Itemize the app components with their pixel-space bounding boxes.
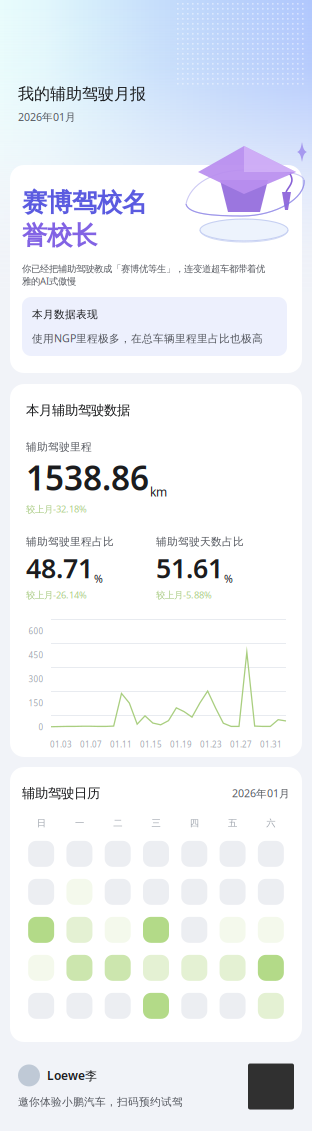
staticText: 较上月-5.88% <box>156 589 212 601</box>
staticText: 我的辅助驾驶月报 <box>18 84 146 104</box>
staticText: 较上月-32.18% <box>26 503 87 515</box>
staticText: 150 <box>28 698 43 708</box>
staticText: 三 <box>151 817 160 829</box>
staticText: 450 <box>28 650 43 660</box>
staticText: 51.61 <box>156 550 223 586</box>
staticText: 四 <box>190 817 199 829</box>
staticText: 48.71 <box>26 550 93 586</box>
staticText: 01.27 <box>230 739 252 750</box>
staticText: 一 <box>75 817 84 829</box>
staticText: 01.03 <box>50 739 72 750</box>
staticText: 赛博驾校名 <box>22 187 147 218</box>
staticText: 辅助驾驶天数占比 <box>156 535 244 548</box>
staticText: 01.23 <box>200 739 222 750</box>
staticText: 日 <box>37 817 46 829</box>
staticText: % <box>224 571 233 586</box>
staticText: 01.31 <box>260 739 282 750</box>
staticText: 600 <box>28 626 43 636</box>
staticText: 五 <box>228 817 237 829</box>
staticText: km <box>150 484 167 500</box>
staticText: 0 <box>38 722 43 732</box>
staticText: 你已经把辅助驾驶教成「赛博优等生」，连变道超车都带着优雅的AI式傲慢 <box>22 263 265 287</box>
staticText: 六 <box>266 817 275 829</box>
staticText: 01.11 <box>110 739 132 750</box>
staticText: 1538.86 <box>26 455 149 500</box>
staticText: 邀你体验小鹏汽车，扫码预约试驾 <box>18 1095 183 1108</box>
staticText: 2026年01月 <box>18 110 76 124</box>
staticText: 01.15 <box>140 739 162 750</box>
staticText: 辅助驾驶日历 <box>22 785 100 801</box>
staticText: 辅助驾驶里程占比 <box>26 535 114 548</box>
staticText: 二 <box>113 817 122 829</box>
staticText: Loewe李 <box>47 1067 97 1083</box>
staticText: 本月辅助驾驶数据 <box>26 402 130 418</box>
staticText: % <box>94 571 103 586</box>
staticText: 01.19 <box>170 739 192 750</box>
staticText: 辅助驾驶里程 <box>26 440 92 453</box>
staticText: 2026年01月 <box>232 786 290 800</box>
staticText: 使用NGP里程极多，在总车辆里程里占比也极高 <box>32 331 263 345</box>
staticText: 300 <box>28 674 43 684</box>
staticText: 誉校长 <box>22 220 97 251</box>
staticText: 本月数据表现 <box>32 308 98 321</box>
staticText: 01.07 <box>80 739 102 750</box>
staticText: 较上月-26.14% <box>26 589 87 601</box>
